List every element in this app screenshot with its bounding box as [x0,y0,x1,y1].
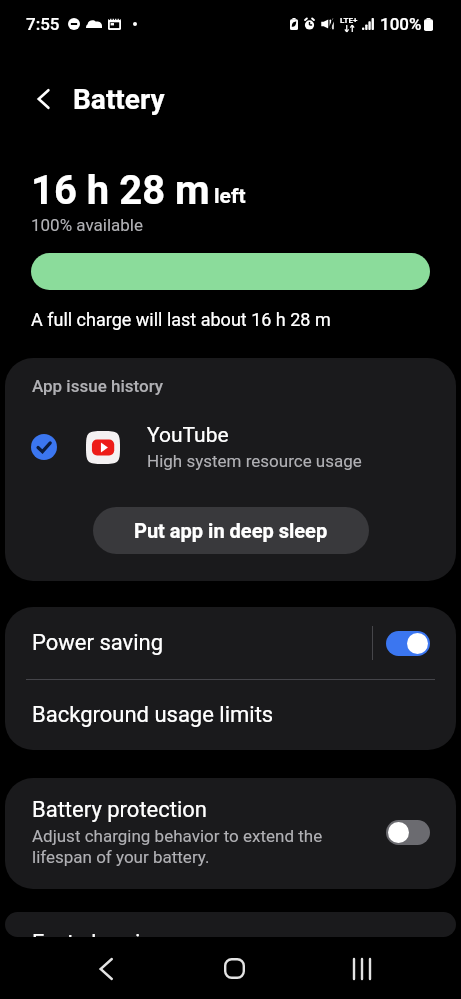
staticText: Battery protection [32,797,208,823]
button[interactable]: Home [198,938,270,999]
button[interactable]: Battery protection [5,778,456,889]
staticText: Battery [73,83,165,116]
staticText: Put app in deep sleep [134,519,328,542]
staticText: LTE+ [340,16,358,25]
staticText: App issue history [32,376,164,396]
staticText: left [214,184,246,209]
staticText: YouTube [147,423,229,448]
staticText: Background usage limits [32,702,274,728]
button[interactable]: Back [24,79,64,119]
button[interactable]: Toggle off [386,820,430,845]
button[interactable]: Back [69,938,141,999]
button[interactable]: Recent apps [326,938,398,999]
staticText: Power saving [32,630,372,656]
button[interactable]: Toggle on [386,631,430,656]
staticText: Adjust charging behavior to extend the l… [32,826,372,867]
staticText: 16 h 28 m [31,167,210,214]
button[interactable]: Put app in deep sleep [93,507,369,554]
button[interactable]: Background usage limits [5,680,456,750]
staticText: 7:55 [26,14,60,34]
staticText: 100% available [31,215,144,235]
staticText: High system resource usage [147,451,362,471]
staticText: A full charge will last about 16 h 28 m [31,309,331,330]
button[interactable]: YouTube [5,422,456,472]
staticText: 100% [380,14,422,34]
staticText: Fast charging [32,930,165,937]
button[interactable]: Power saving [5,607,456,679]
